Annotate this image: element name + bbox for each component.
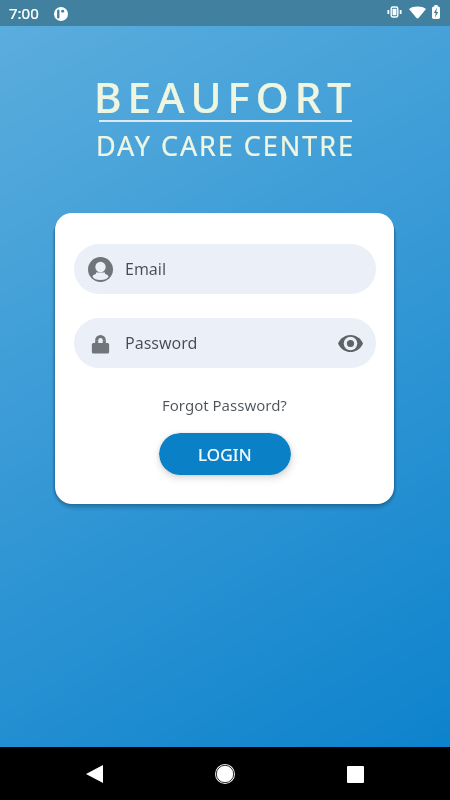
- staticText: Password: [125, 332, 198, 354]
- staticText: BEAUFORT: [94, 68, 358, 125]
- button[interactable]: Email: [74, 244, 376, 294]
- staticText: Email: [125, 258, 167, 280]
- staticText: DAY CARE CENTRE: [96, 127, 355, 164]
- staticText: 7:00: [9, 3, 39, 23]
- button[interactable]: Recent apps: [325, 754, 385, 794]
- button[interactable]: Back: [64, 754, 124, 794]
- staticText: LOGIN: [198, 443, 252, 466]
- staticText: Forgot Password?: [162, 395, 287, 415]
- button[interactable]: LOGIN: [159, 433, 291, 475]
- button[interactable]: Password: [74, 318, 376, 368]
- button[interactable]: Forgot Password?: [158, 391, 291, 419]
- button[interactable]: Show password: [337, 330, 364, 357]
- button[interactable]: Home: [195, 754, 255, 794]
